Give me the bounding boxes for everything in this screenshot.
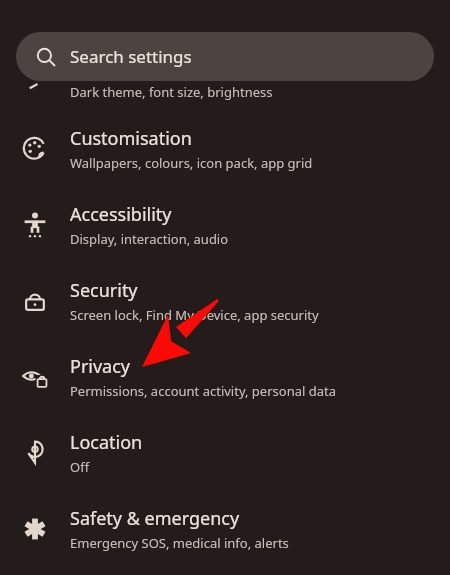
button[interactable]: Safety & emergency bbox=[0, 491, 450, 567]
button[interactable]: Accessibility bbox=[0, 187, 450, 263]
button[interactable]: Location bbox=[0, 415, 450, 491]
staticText: Emergency SOS, medical info, alerts bbox=[70, 534, 289, 552]
staticText: Off bbox=[70, 458, 90, 476]
staticText: Accessibility bbox=[70, 202, 172, 227]
staticText: Permissions, account activity, personal … bbox=[70, 382, 336, 400]
staticText: Customisation bbox=[70, 126, 192, 151]
staticText: Search settings bbox=[70, 45, 192, 68]
staticText: Safety & emergency bbox=[70, 506, 240, 531]
staticText: Wallpapers, colours, icon pack, app grid bbox=[70, 154, 313, 172]
staticText: Dark theme, font size, brightness bbox=[70, 83, 273, 101]
staticText: Privacy bbox=[70, 354, 131, 379]
staticText: Display, interaction, audio bbox=[70, 230, 229, 248]
button[interactable]: Privacy bbox=[0, 339, 450, 415]
button[interactable]: Search settings bbox=[16, 32, 434, 81]
button[interactable]: Security bbox=[0, 263, 450, 339]
staticText: Security bbox=[70, 278, 138, 303]
staticText: Screen lock, Find My Device, app securit… bbox=[70, 306, 319, 324]
staticText: Location bbox=[70, 430, 143, 455]
button[interactable]: Customisation bbox=[0, 111, 450, 187]
